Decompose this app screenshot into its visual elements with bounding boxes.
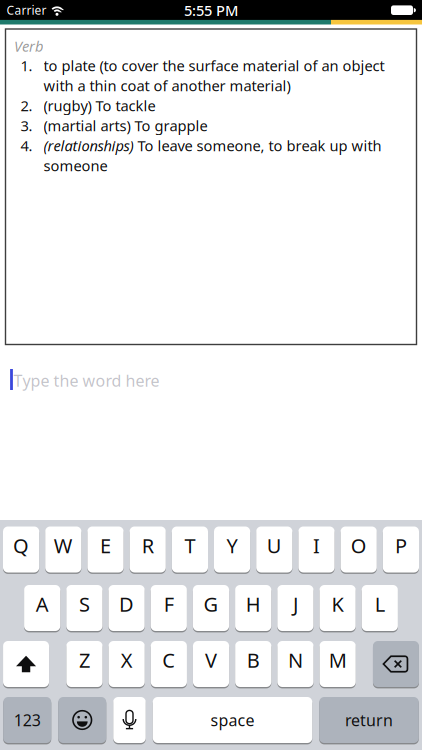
button[interactable]: L xyxy=(362,585,398,631)
staticText: P xyxy=(395,532,407,559)
button[interactable]: D xyxy=(108,585,145,631)
staticText: A xyxy=(36,591,49,617)
staticText: C xyxy=(162,647,175,673)
staticText: U xyxy=(267,532,282,559)
button[interactable]: P xyxy=(383,526,419,572)
button[interactable]: F xyxy=(151,585,187,631)
staticText: (relationships) xyxy=(43,136,133,155)
button[interactable]: H xyxy=(235,585,271,631)
staticText: K xyxy=(332,591,344,617)
button[interactable]: T xyxy=(172,526,208,572)
button[interactable]: V xyxy=(193,641,229,687)
staticText: 2. xyxy=(20,96,32,115)
staticText: D xyxy=(119,591,134,617)
button[interactable]: return xyxy=(319,697,419,743)
staticText: S xyxy=(79,591,90,617)
staticText: space xyxy=(210,709,254,731)
staticText: B xyxy=(247,647,260,673)
staticText: (rugby) To tackle xyxy=(43,96,155,115)
button[interactable]: I xyxy=(298,526,335,572)
staticText: to plate (to cover the surface material … xyxy=(43,56,384,75)
button[interactable]: J xyxy=(277,585,313,631)
button[interactable]: Emoji xyxy=(58,697,106,743)
staticText: Y xyxy=(227,532,238,559)
staticText: X xyxy=(121,647,133,673)
staticText: return xyxy=(345,709,393,731)
button[interactable]: N xyxy=(277,641,313,687)
staticText: Verb xyxy=(14,36,43,56)
staticText: To leave someone, to break up with xyxy=(133,136,381,155)
staticText: 3. xyxy=(20,116,32,135)
button[interactable]: X xyxy=(109,641,145,687)
button[interactable]: Q xyxy=(3,526,39,572)
staticText: H xyxy=(246,591,261,617)
staticText: someone xyxy=(43,156,107,175)
staticText: Type the word here xyxy=(13,370,159,391)
staticText: E xyxy=(100,532,111,559)
staticText: T xyxy=(184,532,195,559)
staticText: with a thin coat of another material) xyxy=(43,76,290,95)
staticText: W xyxy=(54,532,73,559)
staticText: 1. xyxy=(20,56,32,75)
button[interactable]: C xyxy=(151,641,187,687)
staticText: J xyxy=(293,591,298,617)
button[interactable]: Y xyxy=(214,526,250,572)
staticText: Carrier xyxy=(6,2,46,18)
staticText: Q xyxy=(13,532,29,559)
button[interactable]: O xyxy=(341,526,377,572)
staticText: V xyxy=(205,647,217,673)
button[interactable]: Dictation xyxy=(113,697,146,743)
staticText: 123 xyxy=(14,709,41,731)
button[interactable]: E xyxy=(87,526,124,572)
button[interactable]: space xyxy=(153,697,312,743)
staticText: (martial arts) To grapple xyxy=(43,116,207,135)
button[interactable]: 123 xyxy=(3,697,51,743)
button[interactable]: R xyxy=(130,526,166,572)
staticText: F xyxy=(164,591,174,617)
button[interactable]: A xyxy=(24,585,60,631)
button[interactable]: B xyxy=(235,641,271,687)
button[interactable]: S xyxy=(66,585,102,631)
button[interactable]: W xyxy=(45,526,81,572)
staticText: 4. xyxy=(20,136,32,155)
staticText: R xyxy=(142,532,154,559)
staticText: N xyxy=(288,647,303,673)
staticText: Z xyxy=(79,647,90,673)
staticText: M xyxy=(329,647,347,673)
button[interactable]: Z xyxy=(66,641,103,687)
staticText: 5:55 PM xyxy=(184,0,238,20)
button[interactable]: U xyxy=(256,526,292,572)
button[interactable]: Delete xyxy=(373,641,419,687)
button[interactable]: Shift xyxy=(3,641,49,687)
staticText: L xyxy=(375,591,385,617)
button[interactable]: K xyxy=(319,585,356,631)
staticText: G xyxy=(203,591,218,617)
button[interactable]: Type the word here xyxy=(0,365,422,394)
staticText: I xyxy=(313,532,320,559)
staticText: O xyxy=(351,532,367,559)
button[interactable]: G xyxy=(193,585,229,631)
button[interactable]: M xyxy=(319,641,356,687)
